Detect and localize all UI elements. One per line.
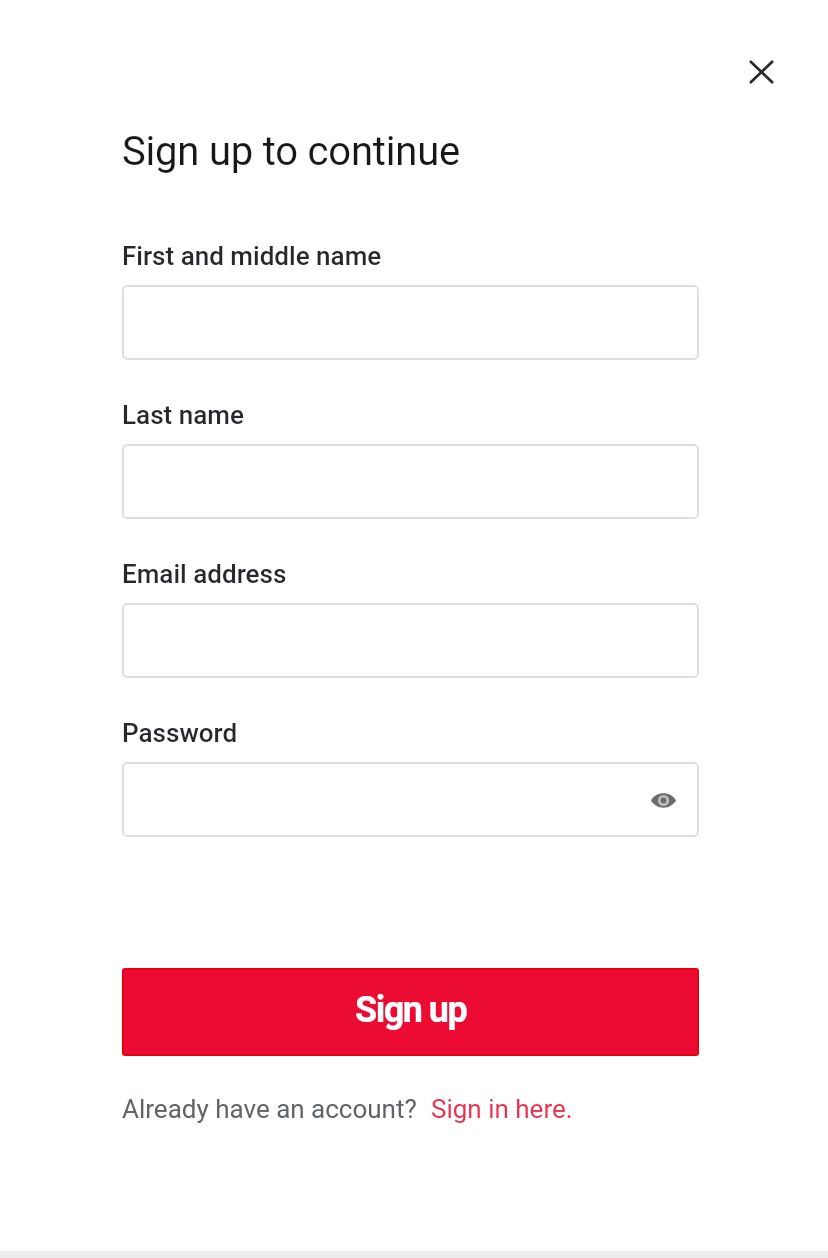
- button[interactable]: [122, 285, 699, 360]
- staticText: Sign in here.: [431, 1094, 573, 1124]
- staticText: Email address: [122, 559, 287, 589]
- staticText: Sign up to continue: [122, 128, 461, 175]
- button[interactable]: Sign up: [122, 968, 699, 1056]
- button[interactable]: [122, 444, 699, 519]
- button[interactable]: Sign in here.: [431, 1094, 573, 1124]
- staticText: Password: [122, 718, 238, 748]
- button[interactable]: Show password: [643, 780, 683, 820]
- staticText: First and middle name: [122, 241, 382, 271]
- staticText: Sign up: [355, 989, 467, 1031]
- button[interactable]: Close: [737, 48, 785, 96]
- button[interactable]: [122, 603, 699, 678]
- button[interactable]: Show password: [122, 762, 699, 837]
- staticText: Last name: [122, 400, 244, 430]
- staticText: Already have an account?: [122, 1094, 417, 1124]
